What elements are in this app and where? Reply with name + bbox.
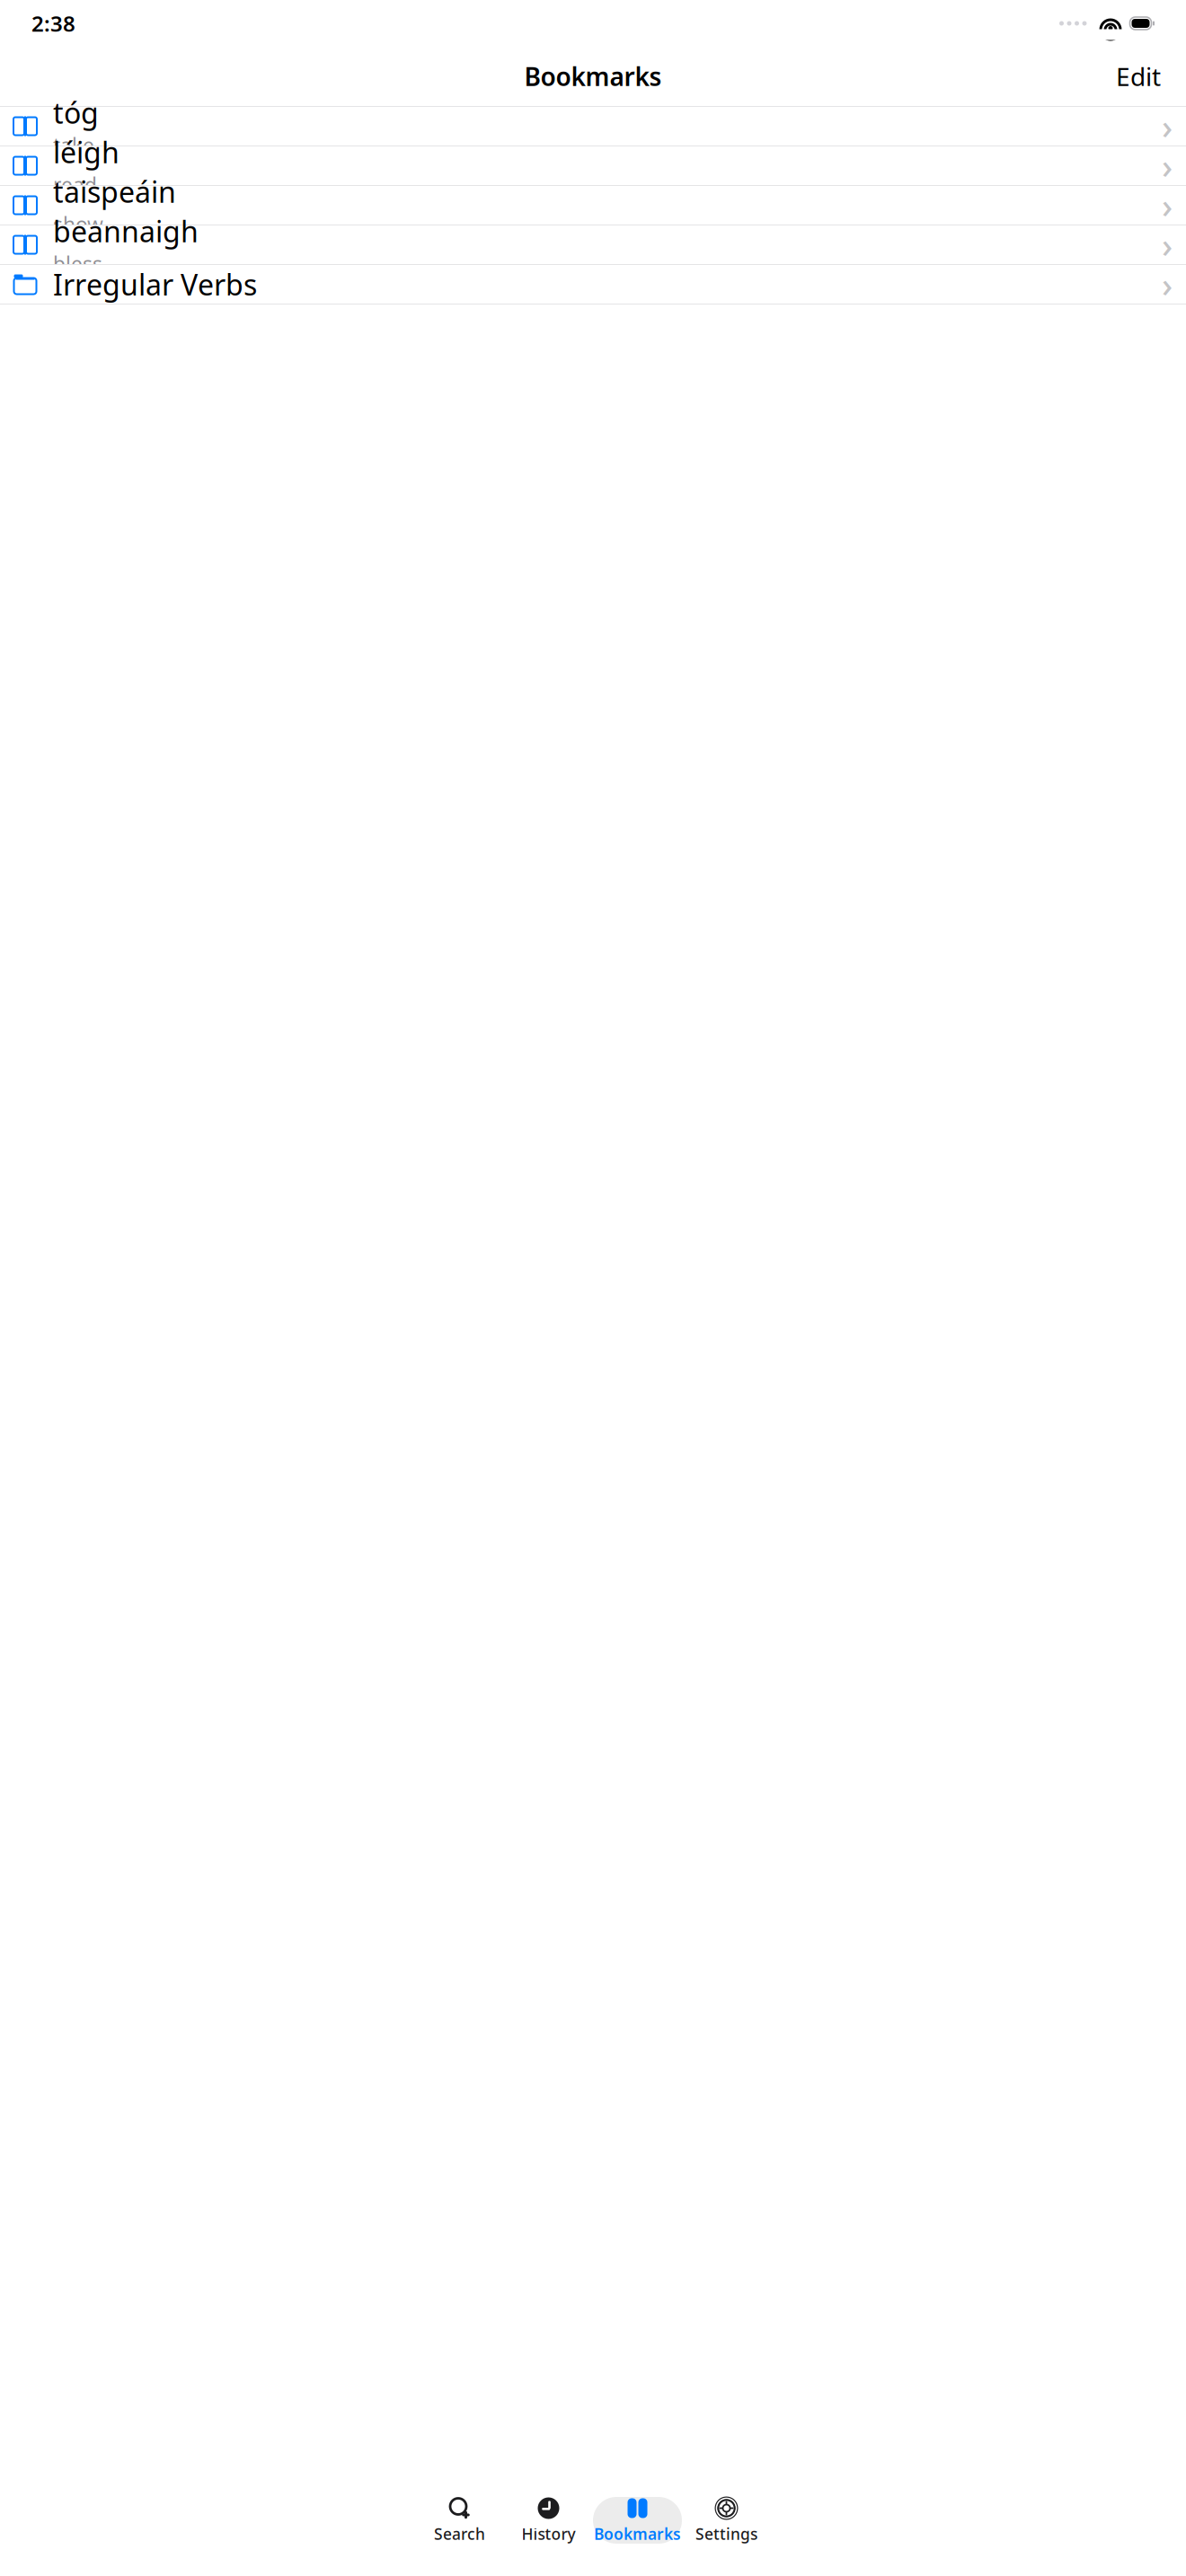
- staticText: 2:38: [31, 9, 75, 38]
- staticText: léigh: [53, 133, 119, 171]
- staticText: Bookmarks: [594, 2523, 681, 2544]
- staticText: ›: [1162, 222, 1173, 267]
- button[interactable]: Irregular Verbs: [0, 265, 1186, 304]
- button[interactable]: beannaigh: [0, 225, 1186, 264]
- staticText: read: [53, 171, 97, 198]
- button[interactable]: Edit: [1107, 49, 1170, 104]
- staticText: Settings: [695, 2523, 757, 2544]
- staticText: tóg: [53, 94, 99, 132]
- staticText: show: [53, 211, 103, 238]
- button[interactable]: tóg: [0, 107, 1186, 146]
- button[interactable]: Search: [415, 2497, 504, 2544]
- staticText: take: [53, 132, 94, 159]
- staticText: taispeáin: [53, 173, 176, 211]
- staticText: Bookmarks: [524, 60, 662, 93]
- button[interactable]: taispeáin: [0, 186, 1186, 225]
- staticText: beannaigh: [53, 212, 199, 250]
- staticText: History: [522, 2523, 575, 2544]
- button[interactable]: léigh: [0, 146, 1186, 185]
- staticText: Irregular Verbs: [53, 265, 257, 303]
- button[interactable]: Settings: [682, 2497, 771, 2544]
- button[interactable]: Bookmarks: [593, 2497, 682, 2544]
- staticText: ›: [1162, 183, 1173, 228]
- staticText: bless: [53, 250, 102, 277]
- button[interactable]: History: [504, 2497, 593, 2544]
- staticText: ›: [1162, 262, 1173, 307]
- staticText: ›: [1162, 104, 1173, 148]
- staticText: ›: [1162, 143, 1173, 188]
- staticText: Edit: [1116, 60, 1161, 93]
- staticText: Search: [434, 2523, 485, 2544]
